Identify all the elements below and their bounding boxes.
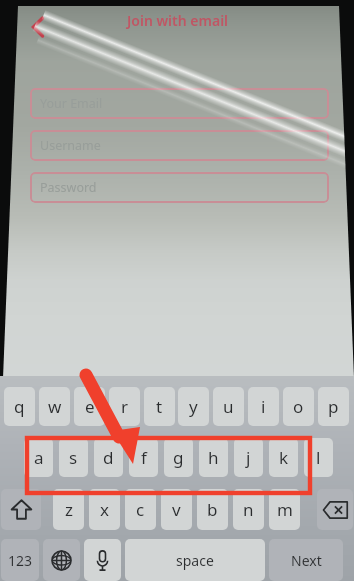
- button[interactable]: i: [248, 387, 279, 426]
- button[interactable]: y: [178, 387, 209, 426]
- staticText: m: [277, 498, 293, 521]
- button[interactable]: Password: [30, 172, 329, 203]
- staticText: c: [136, 498, 145, 521]
- button[interactable]: r: [109, 387, 140, 426]
- button[interactable]: a: [24, 438, 53, 477]
- staticText: Username: [40, 137, 101, 154]
- staticText: i: [261, 395, 266, 418]
- staticText: d: [103, 446, 114, 469]
- button[interactable]: Shift: [1, 489, 41, 530]
- button[interactable]: p: [318, 387, 349, 426]
- staticText: b: [207, 498, 218, 521]
- button[interactable]: k: [269, 438, 298, 477]
- staticText: Next: [291, 551, 322, 570]
- staticText: f: [141, 446, 147, 469]
- button[interactable]: Back: [23, 12, 53, 42]
- button[interactable]: m: [269, 489, 300, 530]
- button[interactable]: e: [74, 387, 105, 426]
- button[interactable]: Backspace: [317, 489, 353, 530]
- button[interactable]: space: [125, 539, 265, 581]
- staticText: t: [156, 395, 163, 418]
- button[interactable]: z: [53, 489, 84, 530]
- button[interactable]: l: [304, 438, 333, 477]
- staticText: l: [316, 446, 321, 469]
- button[interactable]: Username: [30, 130, 329, 161]
- button[interactable]: t: [144, 387, 175, 426]
- staticText: o: [293, 395, 304, 418]
- button[interactable]: n: [233, 489, 264, 530]
- staticText: Password: [40, 179, 97, 196]
- button[interactable]: j: [234, 438, 263, 477]
- staticText: n: [243, 498, 254, 521]
- button[interactable]: Change keyboard: [43, 539, 80, 581]
- button[interactable]: u: [213, 387, 244, 426]
- staticText: x: [100, 498, 109, 521]
- staticText: s: [69, 446, 78, 469]
- staticText: q: [14, 395, 25, 418]
- staticText: 123: [8, 551, 33, 570]
- staticText: e: [85, 395, 95, 418]
- button[interactable]: f: [129, 438, 158, 477]
- button[interactable]: c: [125, 489, 156, 530]
- staticText: a: [34, 446, 44, 469]
- button[interactable]: w: [39, 387, 70, 426]
- staticText: k: [279, 446, 289, 469]
- staticText: j: [246, 446, 251, 469]
- staticText: p: [328, 395, 339, 418]
- button[interactable]: d: [94, 438, 123, 477]
- staticText: y: [189, 395, 198, 418]
- button[interactable]: o: [283, 387, 314, 426]
- button[interactable]: 123: [1, 539, 39, 581]
- staticText: Join with email: [127, 11, 229, 30]
- staticText: z: [65, 498, 73, 521]
- staticText: u: [223, 395, 234, 418]
- staticText: g: [173, 446, 184, 469]
- button[interactable]: Dictation: [84, 539, 121, 581]
- button[interactable]: Next: [269, 539, 343, 581]
- button[interactable]: v: [161, 489, 192, 530]
- button[interactable]: h: [199, 438, 228, 477]
- staticText: h: [208, 446, 219, 469]
- staticText: r: [121, 395, 129, 418]
- button[interactable]: s: [59, 438, 88, 477]
- button[interactable]: x: [89, 489, 120, 530]
- staticText: v: [172, 498, 181, 521]
- button[interactable]: Your Email: [30, 88, 329, 119]
- staticText: w: [48, 395, 62, 418]
- staticText: space: [176, 551, 214, 570]
- button[interactable]: b: [197, 489, 228, 530]
- button[interactable]: q: [4, 387, 35, 426]
- button[interactable]: g: [164, 438, 193, 477]
